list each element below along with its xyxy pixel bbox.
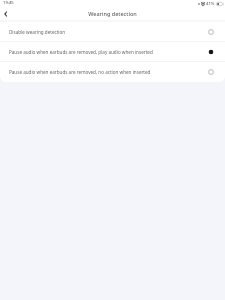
button[interactable]: Disable wearing detection bbox=[0, 22, 225, 42]
button[interactable]: Back bbox=[0, 7, 12, 20]
staticText: Pause audio when earbuds are removed, no… bbox=[9, 69, 204, 75]
button[interactable]: Pause audio when earbuds are removed, pl… bbox=[0, 42, 225, 62]
staticText: Wearing detection bbox=[88, 10, 137, 17]
staticText: Disable wearing detection bbox=[9, 29, 204, 35]
staticText: 19:45 bbox=[3, 0, 14, 6]
staticText: Pause audio when earbuds are removed, pl… bbox=[9, 49, 204, 55]
button[interactable]: Pause audio when earbuds are removed, no… bbox=[0, 62, 225, 82]
staticText: 41% bbox=[206, 1, 215, 7]
